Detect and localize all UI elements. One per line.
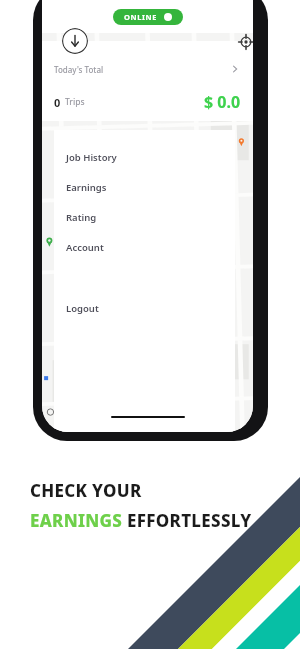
- button[interactable]: Account: [54, 232, 235, 262]
- staticText: Trips: [65, 96, 85, 108]
- button[interactable]: Recenter map: [238, 34, 253, 50]
- staticText: Earnings: [66, 181, 107, 194]
- button[interactable]: Logout: [54, 293, 235, 323]
- staticText: 0: [54, 95, 61, 110]
- button[interactable]: Earnings: [54, 172, 235, 202]
- staticText: Job History: [66, 151, 117, 164]
- staticText: Logout: [66, 302, 99, 315]
- button[interactable]: Rating: [54, 202, 235, 232]
- staticText: $ 0.0: [204, 91, 241, 113]
- staticText: Today's Total: [54, 64, 104, 75]
- staticText: ONLINE: [124, 12, 158, 22]
- staticText: EARNINGS EFFORTLESSLY: [30, 509, 252, 532]
- button[interactable]: Job History: [54, 142, 235, 172]
- button[interactable]: ONLINE: [113, 9, 183, 25]
- button[interactable]: Collapse: [62, 28, 88, 54]
- staticText: Account: [66, 241, 104, 254]
- staticText: Rating: [66, 211, 97, 224]
- staticText: CHECK YOUR: [30, 479, 142, 502]
- button[interactable]: Today's Total: [42, 63, 253, 75]
